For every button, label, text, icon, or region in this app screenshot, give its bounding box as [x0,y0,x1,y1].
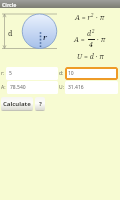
staticText: Circle [2,1,17,8]
button[interactable]: Circle [0,0,120,8]
staticText: d [87,29,92,39]
staticText: · π [95,35,106,45]
staticText: Calculate [3,100,31,108]
button[interactable]: Help [35,97,45,111]
staticText: 2 [92,28,95,34]
staticText: 78.540 [10,84,26,91]
button[interactable]: 31.416 [65,81,118,94]
button[interactable]: 5 [6,67,58,80]
staticText: ? [39,100,42,108]
staticText: 31.416 [68,84,84,91]
staticText: U = d · π [77,52,104,62]
staticText: r: [1,70,5,77]
staticText: U: [59,84,64,91]
button[interactable]: 78.540 [7,81,58,94]
staticText: · π [94,13,105,23]
button[interactable]: Calculate [1,97,33,111]
staticText: 4 [89,40,93,50]
staticText: d [8,29,13,39]
staticText: d: [59,70,64,77]
staticText: 5 [9,70,12,77]
button[interactable]: 10 [65,67,118,80]
staticText: r [43,32,48,42]
staticText: A: [1,84,6,91]
staticText: A = [74,35,87,45]
staticText: 10 [68,70,74,77]
staticText: A = r [75,13,91,23]
staticText: 2 [91,12,94,18]
